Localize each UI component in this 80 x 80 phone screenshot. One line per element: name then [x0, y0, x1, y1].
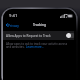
staticText: 9:41	[9, 13, 18, 19]
button[interactable]: Allow Apps to Request to Track	[3, 31, 76, 40]
staticText: Allow apps to ask to track your activity…	[6, 42, 73, 45]
staticText: Learn more...	[26, 45, 45, 48]
button[interactable]: Back	[6, 23, 19, 27]
other: Back	[6, 23, 8, 27]
staticText: Allow Apps to Request to Track	[6, 34, 51, 38]
staticText: Privacy	[8, 23, 19, 27]
staticText: Tracking	[33, 23, 46, 27]
button[interactable]: Toggle	[66, 33, 75, 38]
staticText: and websites.	[6, 45, 26, 48]
button[interactable]: and websites.	[6, 45, 45, 48]
